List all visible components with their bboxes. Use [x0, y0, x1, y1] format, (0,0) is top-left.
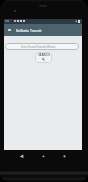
button[interactable]: Back	[17, 152, 26, 161]
staticText: SEARCH	[38, 53, 50, 57]
button[interactable]: Open navigation menu	[5, 24, 14, 36]
staticText: Kolkata Transit	[16, 28, 42, 33]
button[interactable]: Recents	[60, 152, 69, 161]
button[interactable]: Home	[39, 152, 48, 161]
button[interactable]: SEARCH	[35, 52, 52, 63]
button[interactable]: Enter Route Number/Name	[5, 43, 79, 50]
staticText: Enter Route Number/Name	[21, 45, 56, 49]
